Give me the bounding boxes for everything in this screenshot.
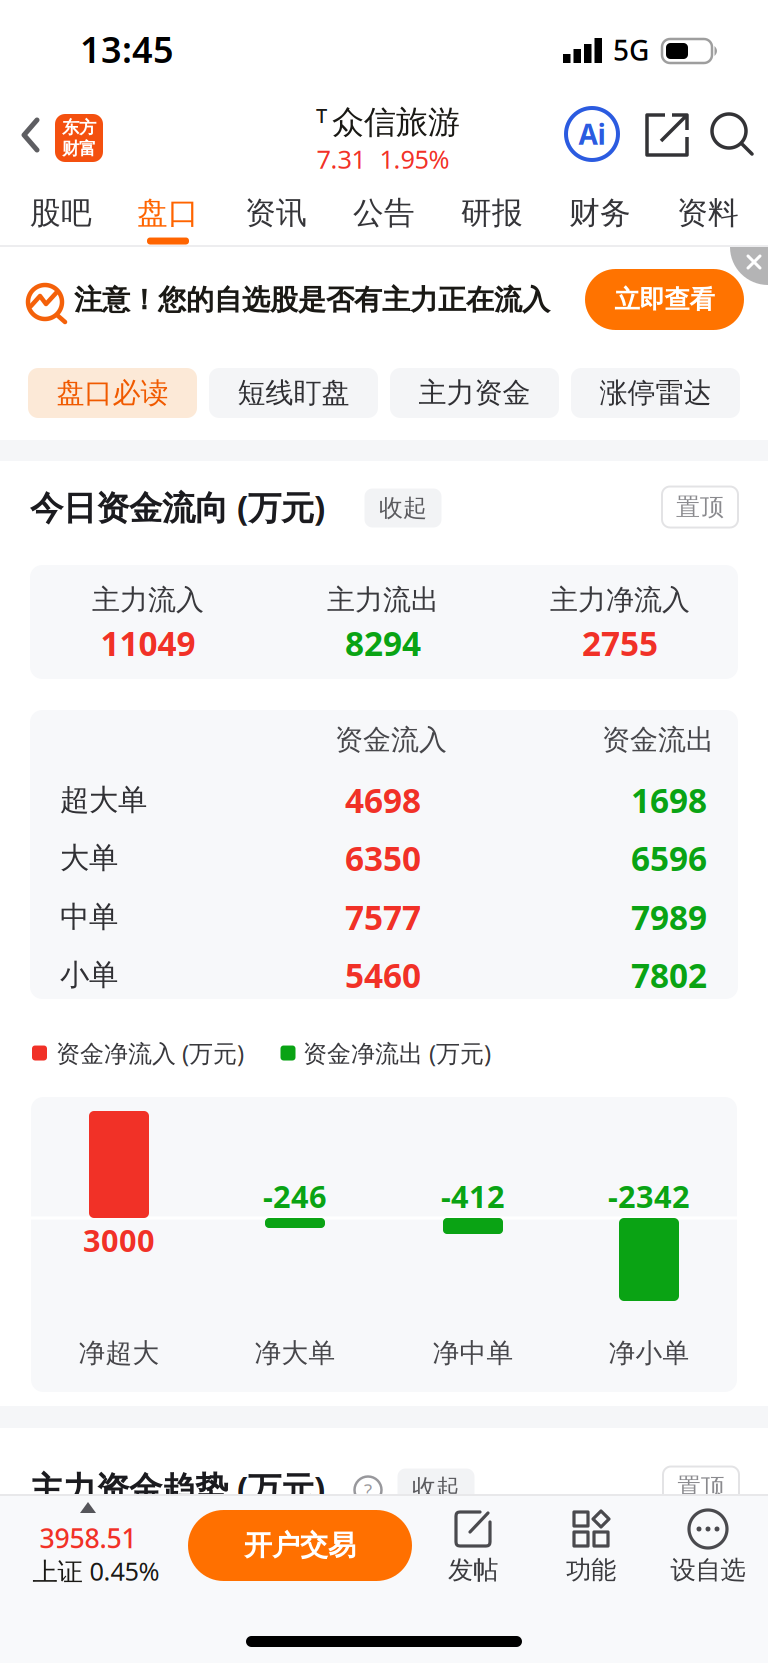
button[interactable]: 说明 [354,1476,381,1503]
staticText: -412 [441,1176,505,1216]
staticText: 功能 [566,1554,616,1585]
staticText: 3000 [83,1220,155,1260]
staticText: 公告 [353,194,415,232]
button[interactable]: 置顶 [663,1466,739,1507]
button[interactable]: 立即查看 [585,269,744,330]
staticText: 置顶 [676,492,724,522]
staticText: 发帖 [448,1554,498,1585]
button[interactable]: 分享 [645,113,689,157]
staticText: 小单 [60,957,118,993]
staticText: 盘口必读 [56,376,168,410]
staticText: 短线盯盘 [237,376,349,410]
staticText: 1698 [631,778,707,822]
staticText: 大单 [60,840,118,876]
staticText: 3958.51 [39,1520,136,1556]
staticText: 8294 [345,621,421,665]
staticText: 净中单 [432,1337,513,1369]
button[interactable]: 开户交易 [188,1510,412,1581]
button[interactable]: 研报 [461,194,523,232]
button[interactable]: Ai 助手 [566,108,618,160]
staticText: 主力资金趋势 (万元) [30,1466,325,1510]
button[interactable]: 发帖 [0,0,768,1663]
staticText: 上证 0.45% [32,1554,159,1588]
staticText: 开户交易 [244,1528,356,1563]
button[interactable]: 3958.51 [0,0,768,1663]
staticText: 7577 [345,895,421,939]
staticText: 主力净流入 [550,583,690,617]
button[interactable]: 资料 [677,194,739,232]
staticText: 主力流出 [327,583,439,617]
staticText: 资金流出 [602,723,714,757]
button[interactable]: 主力资金 [390,368,559,418]
staticText: 7989 [631,895,707,939]
staticText: 资金净流出 (万元) [303,1037,491,1069]
staticText: 财务 [569,194,631,232]
staticText: 主力资金 [418,376,530,410]
button[interactable]: 收起 [364,488,441,527]
button[interactable]: 股吧 [30,194,92,232]
staticText: 收起 [379,493,427,523]
button[interactable]: 关闭 [728,247,768,287]
staticText: 设自选 [670,1554,745,1585]
staticText: 超大单 [60,782,147,818]
staticText: 6596 [631,836,707,880]
button[interactable]: 财务 [569,194,631,232]
staticText: Ai [578,115,605,153]
staticText: 5460 [345,953,421,997]
staticText: ? [364,1478,372,1502]
staticText: 注意！您的自选股是否有主力正在流入 [74,283,550,317]
staticText: 东方 [62,117,96,138]
staticText: T 众信旅游 [316,102,460,142]
staticText: 资讯 [245,194,307,232]
staticText: 5G [613,31,649,69]
button[interactable]: 东方财富 [55,114,103,162]
staticText: 净小单 [608,1337,689,1369]
staticText: -2342 [608,1176,690,1216]
button[interactable]: 盘口必读 [28,368,197,418]
staticText: 置顶 [677,1472,725,1502]
button[interactable]: Back [22,117,40,153]
staticText: -246 [263,1176,327,1216]
staticText: 主力流入 [92,583,204,617]
staticText: 13:45 [80,25,174,73]
button[interactable]: 涨停雷达 [571,368,740,418]
button[interactable]: 功能 [0,0,768,1663]
button[interactable]: 短线盯盘 [209,368,378,418]
staticText: 11049 [100,621,195,665]
staticText: 7802 [631,953,707,997]
staticText: 收起 [412,1473,460,1503]
staticText: 7.31 1.95% [316,142,449,176]
button[interactable]: 公告 [353,194,415,232]
staticText: 净超大 [78,1337,159,1369]
button[interactable]: 盘口 [137,194,199,232]
button[interactable]: 设自选 [0,0,768,1663]
staticText: 中单 [60,899,118,935]
button[interactable]: 收起 [397,1468,474,1507]
staticText: 6350 [345,836,421,880]
staticText: 盘口 [137,194,199,232]
button[interactable]: 置顶 [662,486,738,527]
staticText: 财富 [62,138,96,159]
staticText: 今日资金流向 (万元) [30,485,325,529]
staticText: 股吧 [30,194,92,232]
staticText: 资料 [677,194,739,232]
staticText: 资金流入 [335,723,447,757]
button[interactable]: 搜索 [710,112,754,156]
staticText: 净大单 [254,1337,335,1369]
staticText: 研报 [461,194,523,232]
staticText: 立即查看 [614,284,714,315]
staticText: 2755 [582,621,658,665]
staticText: 资金净流入 (万元) [56,1037,244,1069]
staticText: 涨停雷达 [599,376,711,410]
staticText: 4698 [345,778,421,822]
button[interactable]: 资讯 [245,194,307,232]
